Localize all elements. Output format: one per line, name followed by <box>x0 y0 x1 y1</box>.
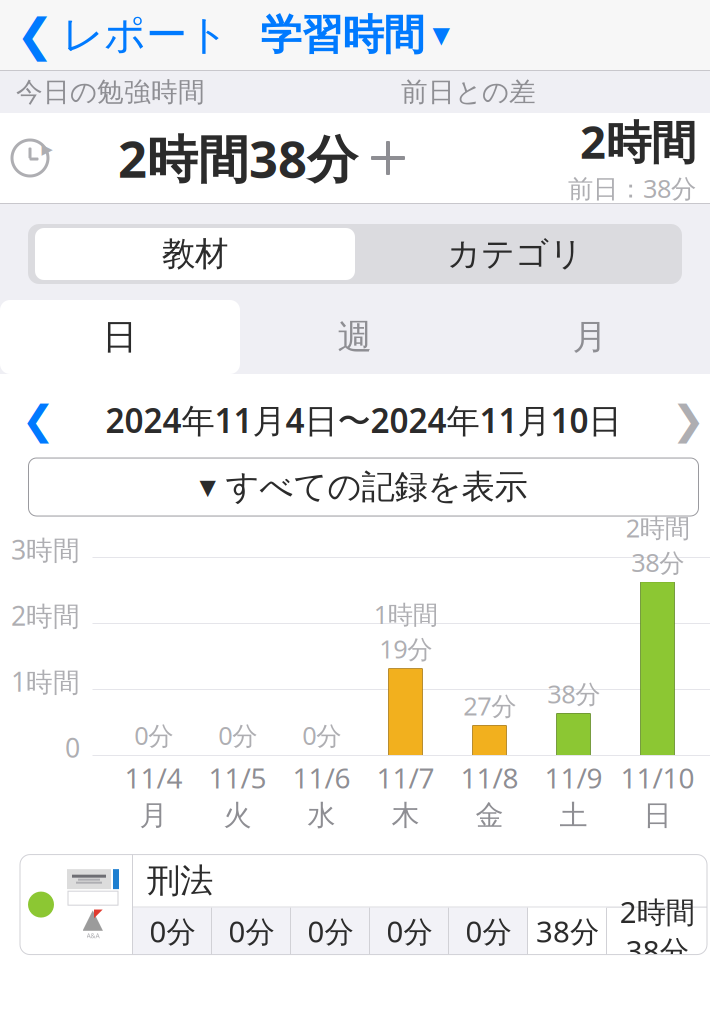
staticText: ▼ <box>432 22 449 48</box>
staticText: 金 <box>475 798 503 833</box>
staticText: 週 <box>337 316 372 358</box>
staticText: 27分 <box>463 689 516 722</box>
staticText: 0分 <box>228 912 274 951</box>
staticText: ❯ <box>671 397 705 443</box>
staticText: 0 <box>65 730 80 765</box>
staticText: 11/9 <box>544 759 602 796</box>
staticText: 0分 <box>386 912 432 951</box>
staticText: カテゴリ <box>447 233 583 274</box>
staticText: 木 <box>391 798 419 833</box>
button[interactable]: 勉強時間を追加 <box>358 136 418 180</box>
staticText: 1時間 <box>11 664 80 699</box>
staticText: 日 <box>102 316 137 358</box>
staticText: ❮ <box>21 397 55 443</box>
staticText: 11/8 <box>460 759 518 796</box>
staticText: 今日の勉強時間 <box>16 76 205 108</box>
staticText: 2時間 38分 <box>625 511 689 579</box>
staticText: 0分 <box>302 718 341 752</box>
staticText: 月 <box>139 798 167 833</box>
staticText: 0分 <box>307 912 353 951</box>
staticText: 2024年11月4日〜2024年11月10日 <box>105 398 621 442</box>
button[interactable]: 日 <box>0 300 240 374</box>
staticText: 38分 <box>547 677 600 710</box>
staticText: 0分 <box>149 912 195 951</box>
staticText: 11/10 <box>620 759 694 796</box>
button[interactable]: 週 <box>240 300 470 374</box>
staticText: 刑法 <box>147 860 213 901</box>
staticText: 2時間 <box>11 598 80 633</box>
staticText: 2時間 <box>580 111 696 171</box>
staticText: 0分 <box>134 718 173 752</box>
staticText: 日 <box>643 798 671 833</box>
staticText: 2時間 38分 <box>619 892 694 970</box>
staticText: 1時間 19分 <box>373 597 437 666</box>
staticText: 土 <box>559 798 587 833</box>
staticText: ◤ <box>93 906 102 920</box>
staticText: ❮ <box>16 9 54 61</box>
staticText: 月 <box>572 316 607 358</box>
staticText: 火 <box>223 798 251 833</box>
button[interactable]: ❮ <box>0 3 229 67</box>
button[interactable]: カテゴリ <box>355 228 675 280</box>
staticText: 学習時間 <box>260 10 424 60</box>
button[interactable]: 次の週 <box>658 392 710 448</box>
staticText: 水 <box>307 798 335 833</box>
staticText: A&A <box>86 931 99 940</box>
staticText: 前日：38分 <box>568 171 696 205</box>
button[interactable]: 教材 <box>35 228 355 280</box>
staticText: ▲ <box>82 903 103 933</box>
staticText: 38分 <box>536 912 599 951</box>
staticText: 11/5 <box>208 759 266 796</box>
staticText: ▼ <box>199 475 215 499</box>
staticText: ▶ <box>41 141 52 157</box>
button[interactable]: ▼ <box>28 458 698 516</box>
staticText: 前日との差 <box>401 76 536 108</box>
staticText: 教材 <box>162 233 228 274</box>
staticText: 11/7 <box>376 759 434 796</box>
staticText: 11/4 <box>124 759 182 796</box>
staticText: 3時間 <box>11 532 80 567</box>
staticText: 11/6 <box>292 759 350 796</box>
staticText: 0分 <box>218 718 257 752</box>
staticText: レポート <box>62 10 229 60</box>
staticText: 0分 <box>465 912 511 951</box>
staticText: 2時間38分 <box>118 124 358 192</box>
button[interactable]: 月 <box>470 300 710 374</box>
staticText: すべての記録を表示 <box>225 466 527 507</box>
button[interactable]: 学習時間 <box>252 4 457 66</box>
button[interactable]: 前の週 <box>8 392 68 448</box>
